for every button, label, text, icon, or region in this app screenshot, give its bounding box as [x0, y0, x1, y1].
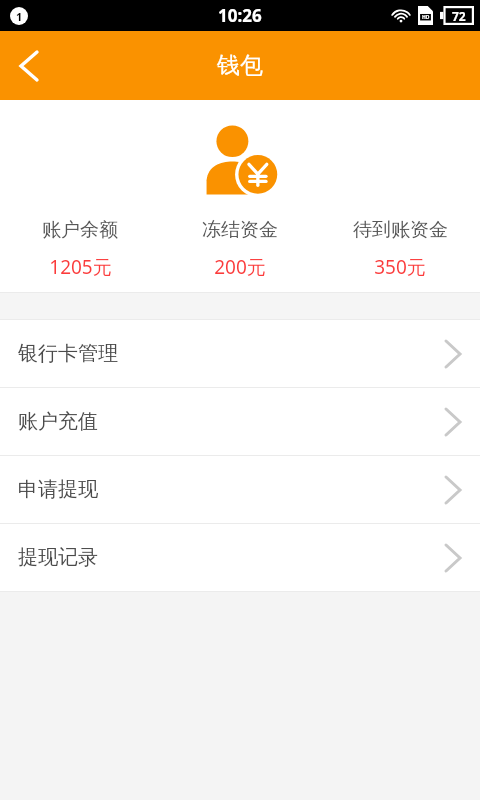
staticText: 350元 — [374, 254, 426, 280]
staticText: 账户余额 — [42, 218, 118, 242]
staticText: 72 — [452, 8, 466, 24]
staticText: 冻结资金 — [202, 218, 278, 242]
staticText: 提现记录 — [18, 545, 98, 570]
button[interactable]: 账户充值 — [0, 388, 480, 455]
staticText: 待到账资金 — [353, 218, 448, 242]
button[interactable]: 申请提现 — [0, 456, 480, 523]
staticText: 银行卡管理 — [18, 341, 118, 366]
button[interactable]: Back — [0, 31, 58, 100]
staticText: 1205元 — [49, 254, 112, 280]
staticText: 申请提现 — [18, 477, 98, 502]
staticText: HD — [422, 14, 430, 21]
button[interactable]: 银行卡管理 — [0, 320, 480, 387]
staticText: 账户充值 — [18, 409, 98, 434]
button[interactable]: 提现记录 — [0, 524, 480, 591]
staticText: 1 — [16, 9, 23, 24]
staticText: 10:26 — [218, 4, 262, 27]
staticText: 钱包 — [217, 51, 263, 80]
staticText: 200元 — [214, 254, 266, 280]
